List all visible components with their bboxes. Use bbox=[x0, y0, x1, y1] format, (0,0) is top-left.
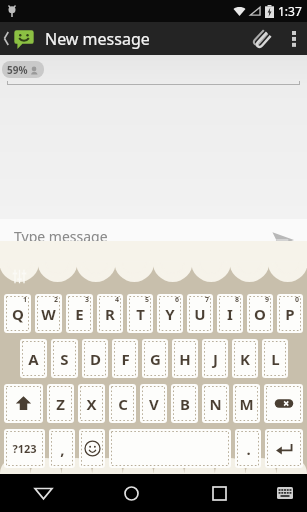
staticText: A bbox=[28, 349, 39, 369]
staticText: N bbox=[209, 394, 222, 414]
button[interactable]: E bbox=[66, 294, 93, 333]
staticText: R bbox=[105, 304, 115, 324]
staticText: 3 bbox=[85, 295, 90, 305]
button[interactable]: Send bbox=[259, 219, 307, 261]
button[interactable]: K bbox=[232, 339, 258, 378]
button[interactable]: V bbox=[140, 384, 167, 423]
button[interactable]: C bbox=[109, 384, 136, 423]
staticText: V bbox=[149, 394, 159, 414]
staticText: Type message bbox=[14, 227, 108, 246]
staticText: L bbox=[271, 349, 280, 369]
button[interactable]: X bbox=[78, 384, 105, 423]
button[interactable]: Attach bbox=[241, 22, 281, 55]
button[interactable]: Home bbox=[87, 474, 175, 512]
button[interactable]: R bbox=[97, 294, 123, 333]
button[interactable]: U bbox=[187, 294, 213, 333]
button[interactable]: Keyboard settings bbox=[8, 265, 30, 287]
button[interactable]: J bbox=[202, 339, 228, 378]
staticText: K bbox=[240, 349, 250, 369]
staticText: 0 bbox=[295, 295, 300, 305]
staticText: F bbox=[121, 349, 130, 369]
button[interactable]: Switch keyboard bbox=[263, 474, 307, 512]
button[interactable]: D bbox=[82, 339, 108, 378]
button[interactable]: G bbox=[142, 339, 168, 378]
staticText: 1:37 bbox=[278, 3, 302, 19]
button[interactable]: N bbox=[202, 384, 229, 423]
button[interactable]: H bbox=[172, 339, 198, 378]
staticText: B bbox=[180, 394, 190, 414]
button[interactable]: Space bbox=[109, 429, 231, 468]
staticText: C bbox=[118, 394, 128, 414]
staticText: S bbox=[60, 349, 69, 369]
staticText: M bbox=[239, 394, 254, 414]
staticText: 6 bbox=[175, 295, 180, 305]
button[interactable]: More options bbox=[281, 22, 307, 55]
staticText: H bbox=[179, 349, 191, 369]
button[interactable]: L bbox=[262, 339, 288, 378]
staticText: ?123 bbox=[12, 441, 37, 456]
button[interactable]: F bbox=[112, 339, 138, 378]
staticText: X bbox=[86, 394, 97, 414]
button[interactable]: 59% bbox=[0, 55, 307, 85]
button[interactable]: Shift bbox=[4, 384, 43, 423]
staticText: Q bbox=[12, 304, 24, 324]
staticText: 8 bbox=[235, 295, 240, 305]
staticText: 9 bbox=[265, 295, 270, 305]
button[interactable]: ?123 bbox=[4, 429, 45, 468]
staticText: E bbox=[75, 304, 84, 324]
staticText: New message bbox=[45, 28, 150, 50]
button[interactable]: S bbox=[51, 339, 78, 378]
staticText: , bbox=[60, 439, 65, 459]
button[interactable]: Emoji bbox=[79, 429, 105, 468]
button[interactable]: A bbox=[20, 339, 47, 378]
staticText: G bbox=[150, 349, 161, 369]
button[interactable]: P bbox=[277, 294, 303, 333]
staticText: O bbox=[254, 304, 266, 324]
button[interactable]: Q bbox=[4, 294, 31, 333]
button[interactable]: I bbox=[217, 294, 243, 333]
button[interactable]: O bbox=[247, 294, 273, 333]
button[interactable]: Z bbox=[47, 384, 74, 423]
button[interactable]: M bbox=[233, 384, 260, 423]
button[interactable]: T bbox=[127, 294, 153, 333]
staticText: U bbox=[194, 304, 206, 324]
staticText: 2 bbox=[54, 295, 59, 305]
button[interactable]: Y bbox=[157, 294, 183, 333]
staticText: 59% bbox=[7, 63, 28, 77]
staticText: 7 bbox=[205, 295, 210, 305]
button[interactable]: , bbox=[49, 429, 75, 468]
button[interactable]: Backspace bbox=[264, 384, 303, 423]
button[interactable]: B bbox=[171, 384, 198, 423]
staticText: 4 bbox=[115, 295, 120, 305]
button[interactable]: Type message bbox=[14, 227, 251, 253]
staticText: P bbox=[285, 304, 295, 324]
staticText: Z bbox=[56, 394, 65, 414]
staticText: I bbox=[227, 304, 233, 324]
button[interactable]: . bbox=[235, 429, 261, 468]
staticText: Y bbox=[165, 304, 175, 324]
button[interactable] bbox=[0, 22, 39, 55]
button[interactable]: Back bbox=[0, 474, 87, 512]
staticText: W bbox=[41, 304, 56, 324]
button[interactable]: W bbox=[35, 294, 62, 333]
staticText: D bbox=[90, 349, 101, 369]
staticText: J bbox=[213, 349, 218, 369]
staticText: 5 bbox=[145, 295, 150, 305]
button[interactable]: Enter bbox=[265, 429, 303, 468]
button[interactable]: Recent apps bbox=[175, 474, 263, 512]
staticText: . bbox=[246, 439, 251, 459]
staticText: 1 bbox=[23, 295, 28, 305]
staticText: T bbox=[136, 304, 145, 324]
